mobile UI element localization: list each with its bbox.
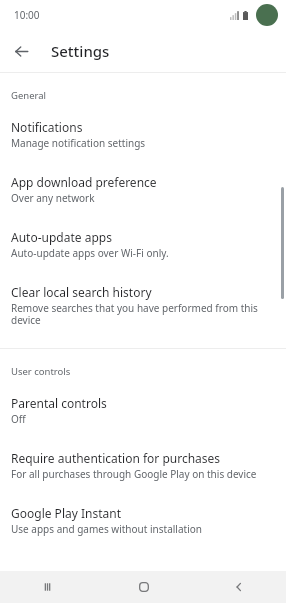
staticText: Settings — [51, 41, 110, 61]
button[interactable]: Back — [191, 571, 286, 603]
staticText: Require authentication for purchases — [11, 450, 221, 466]
staticText: Parental controls — [11, 395, 107, 411]
button[interactable]: Recents — [0, 571, 96, 603]
staticText: Auto-update apps over Wi-Fi only. — [11, 246, 169, 260]
staticText: Off — [11, 412, 26, 426]
staticText: Over any network — [11, 191, 95, 205]
button[interactable]: Require authentication for purchases — [0, 441, 286, 490]
staticText: Manage notification settings — [11, 136, 146, 150]
staticText: Clear local search history — [11, 284, 152, 300]
button[interactable]: Home — [96, 571, 191, 603]
button[interactable]: Back — [0, 30, 42, 72]
staticText: User controls — [11, 365, 71, 378]
staticText: General — [11, 89, 47, 102]
button[interactable]: Google Play Instant — [0, 496, 286, 545]
staticText: Auto-update apps — [11, 229, 112, 245]
button[interactable]: Account — [256, 4, 278, 26]
staticText: Notifications — [11, 119, 83, 135]
button[interactable]: App download preference — [0, 165, 286, 214]
staticText: 10:00 — [14, 8, 40, 22]
button[interactable]: Parental controls — [0, 386, 286, 435]
staticText: Remove searches that you have performed … — [11, 301, 272, 327]
button[interactable]: Auto-update apps — [0, 220, 286, 269]
staticText: For all purchases through Google Play on… — [11, 467, 257, 481]
staticText: Use apps and games without installation — [11, 522, 202, 536]
button[interactable]: Notifications — [0, 110, 286, 159]
staticText: Google Play Instant — [11, 505, 121, 521]
button[interactable]: Clear local search history — [0, 275, 286, 336]
staticText: App download preference — [11, 174, 157, 190]
